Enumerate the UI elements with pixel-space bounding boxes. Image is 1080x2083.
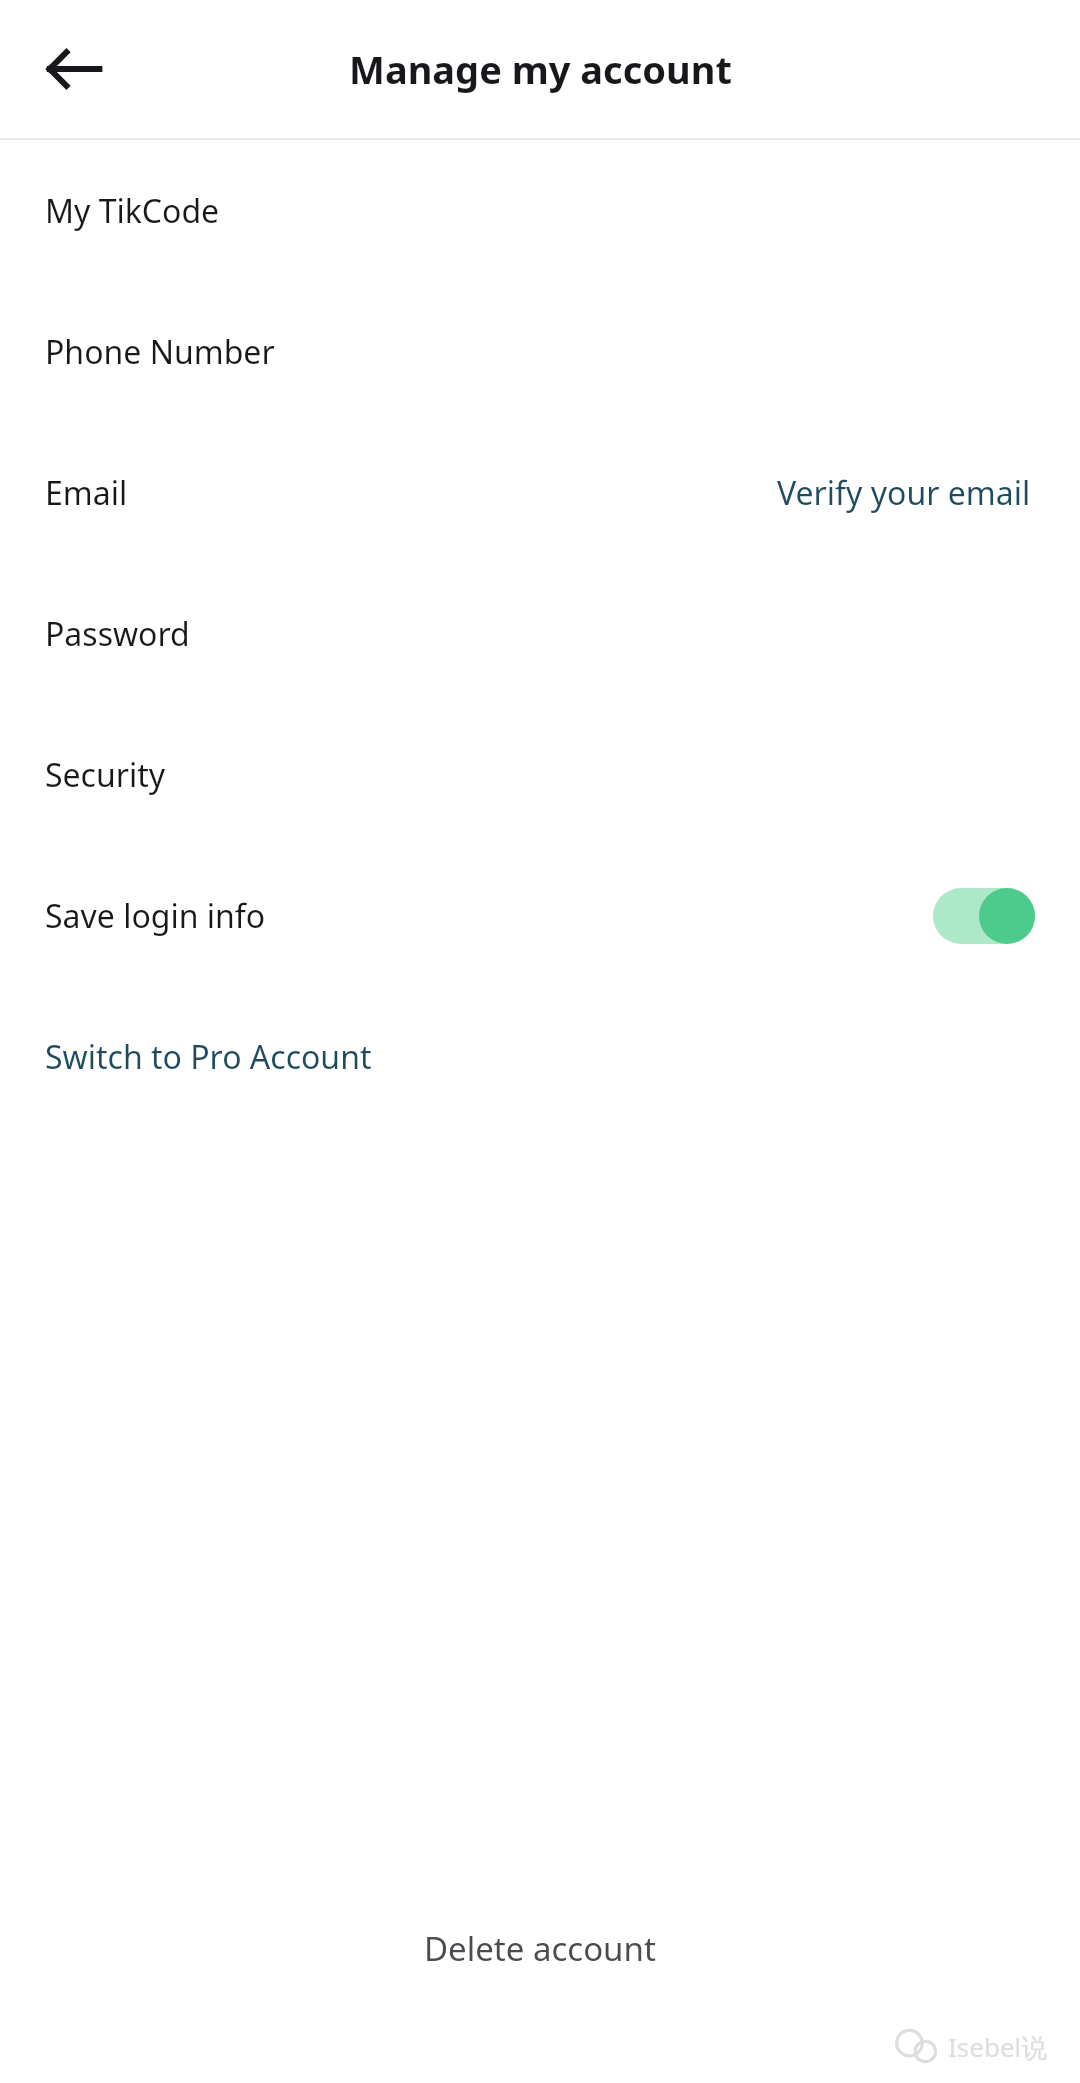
- button[interactable]: Back: [26, 21, 122, 117]
- button[interactable]: Password: [0, 563, 1080, 704]
- staticText: Manage my account: [349, 43, 732, 95]
- staticText: Delete account: [424, 1926, 656, 1971]
- button[interactable]: Phone Number: [0, 281, 1080, 422]
- staticText: Isebel说: [948, 2029, 1048, 2065]
- staticText: Email: [45, 471, 128, 515]
- staticText: My TikCode: [45, 189, 220, 233]
- staticText: Phone Number: [45, 330, 275, 374]
- button[interactable]: Save login info: [0, 845, 1080, 986]
- staticText: Verify your email: [777, 471, 1031, 515]
- staticText: Save login info: [45, 894, 266, 938]
- staticText: Switch to Pro Account: [45, 1035, 372, 1079]
- button[interactable]: Security: [0, 704, 1080, 845]
- staticText: Security: [45, 753, 166, 797]
- button[interactable]: Email: [0, 422, 1080, 563]
- button[interactable]: Save login info, on: [933, 888, 1035, 944]
- button[interactable]: Verify your email: [773, 467, 1035, 519]
- button[interactable]: Switch to Pro Account: [0, 986, 1080, 1127]
- button[interactable]: Delete account: [398, 1914, 682, 1983]
- button[interactable]: My TikCode: [0, 140, 1080, 281]
- staticText: Password: [45, 612, 190, 656]
